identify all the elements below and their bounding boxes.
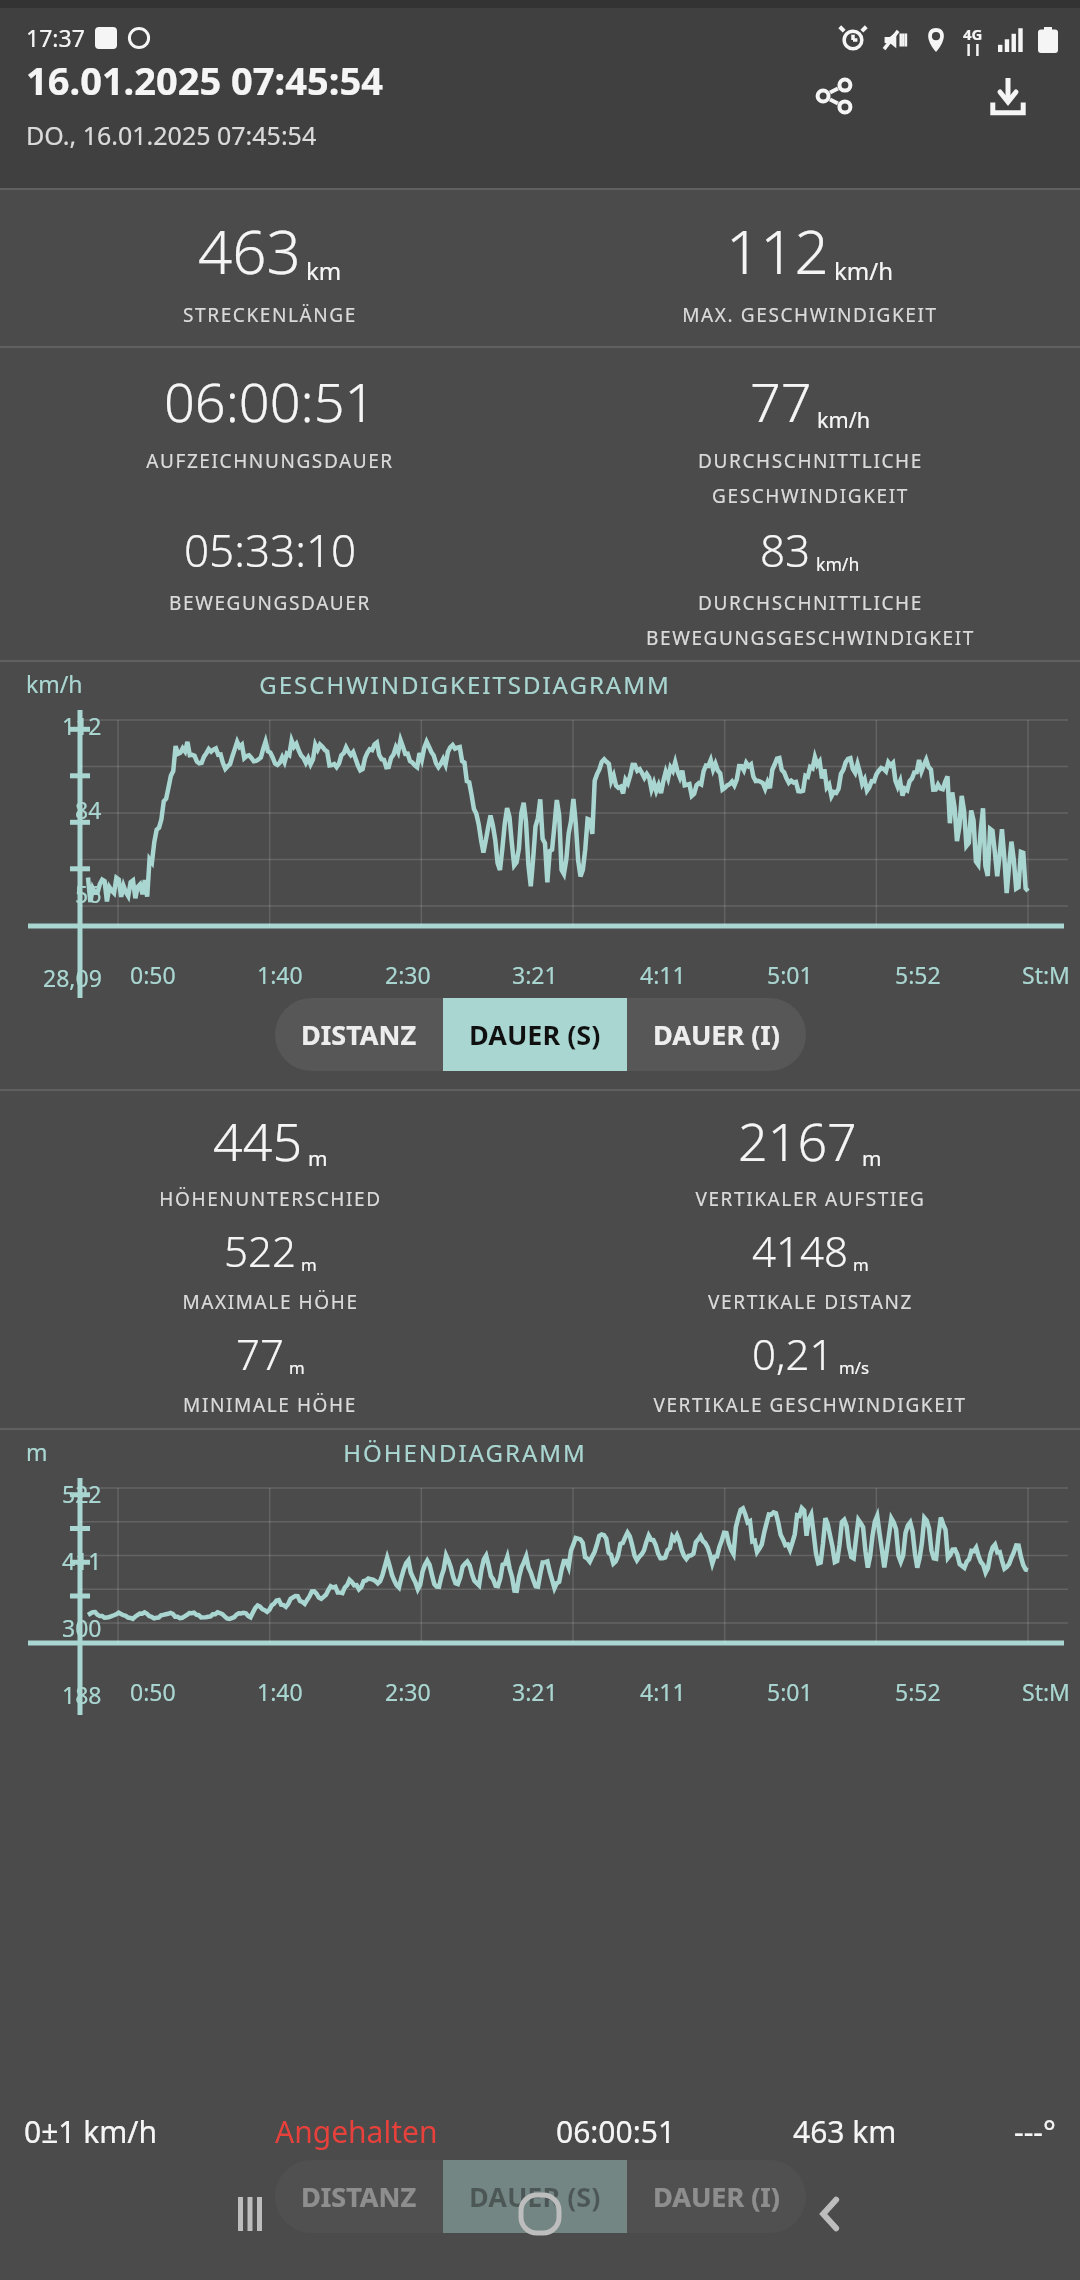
staticText: km bbox=[306, 254, 342, 287]
staticText: VERTIKALE DISTANZ bbox=[708, 1289, 913, 1315]
staticText: 4:11 bbox=[640, 1676, 686, 1707]
staticText: 16.01.2025 07:45:54 bbox=[26, 54, 383, 106]
staticText: DAUER (I) bbox=[653, 2178, 780, 2215]
staticText: 4:11 bbox=[640, 959, 686, 990]
button[interactable]: Share bbox=[802, 64, 866, 128]
staticText: 28,09 bbox=[43, 962, 102, 993]
staticText: 112 bbox=[62, 710, 102, 741]
staticText: m bbox=[289, 1356, 305, 1379]
staticText: St:M bbox=[1022, 959, 1070, 990]
staticText: 522 bbox=[62, 1478, 102, 1509]
staticText: 2167 bbox=[738, 1105, 857, 1176]
staticText: 445 bbox=[213, 1105, 303, 1176]
staticText: MAXIMALE HÖHE bbox=[182, 1289, 359, 1315]
staticText: VERTIKALE GESCHWINDIGKEIT bbox=[653, 1392, 967, 1418]
staticText: m bbox=[853, 1253, 869, 1276]
staticText: 2:30 bbox=[385, 959, 431, 990]
button[interactable]: DAUER (S) bbox=[443, 2160, 627, 2233]
staticText: ---° bbox=[1014, 2111, 1056, 2152]
staticText: 06:00:51 bbox=[556, 2111, 676, 2152]
button[interactable]: DAUER (S) bbox=[443, 998, 627, 1071]
staticText: 17:37 bbox=[26, 22, 85, 53]
staticText: 77 bbox=[236, 1325, 284, 1382]
staticText: 0,21 bbox=[752, 1325, 834, 1382]
button[interactable]: DAUER (I) bbox=[627, 2160, 806, 2233]
staticText: HÖHENDIAGRAMM bbox=[0, 1436, 930, 1469]
staticText: St:M bbox=[1022, 1676, 1070, 1707]
staticText: km/h bbox=[816, 552, 860, 576]
staticText: 1:40 bbox=[257, 959, 303, 990]
button[interactable]: DAUER (I) bbox=[627, 998, 806, 1071]
staticText: 5:01 bbox=[767, 959, 813, 990]
staticText: 188 bbox=[62, 1679, 102, 1710]
staticText: DO., 16.01.2025 07:45:54 bbox=[26, 118, 317, 152]
staticText: 5:01 bbox=[767, 1676, 813, 1707]
staticText: Angehalten bbox=[275, 2111, 438, 2152]
staticText: 56 bbox=[75, 878, 102, 909]
staticText: 0:50 bbox=[130, 1676, 176, 1707]
staticText: DAUER (I) bbox=[653, 1016, 780, 1053]
staticText: 2:30 bbox=[385, 1676, 431, 1707]
staticText: DURCHSCHNITTLICHE GESCHWINDIGKEIT bbox=[698, 448, 923, 508]
staticText: 84 bbox=[75, 794, 102, 825]
staticText: m bbox=[301, 1253, 317, 1276]
staticText: m bbox=[862, 1144, 882, 1172]
staticText: 0±1 km/h bbox=[24, 2111, 158, 2152]
staticText: AUFZEICHNUNGSDAUER bbox=[146, 448, 394, 474]
staticText: km/h bbox=[26, 668, 83, 699]
staticText: 05:33:10 bbox=[184, 520, 357, 580]
staticText: 411 bbox=[62, 1545, 102, 1576]
staticText: DISTANZ bbox=[301, 1016, 417, 1053]
staticText: 06:00:51 bbox=[164, 364, 376, 438]
staticText: 1:40 bbox=[257, 1676, 303, 1707]
staticText: DAUER (S) bbox=[469, 1016, 601, 1053]
staticText: MINIMALE HÖHE bbox=[183, 1392, 357, 1418]
staticText: km/h bbox=[834, 254, 894, 287]
staticText: 3:21 bbox=[512, 1676, 558, 1707]
staticText: m/s bbox=[839, 1356, 869, 1379]
staticText: 300 bbox=[62, 1612, 102, 1643]
staticText: 522 bbox=[224, 1222, 296, 1279]
staticText: VERTIKALER AUFSTIEG bbox=[695, 1186, 926, 1212]
staticText: 0:50 bbox=[130, 959, 176, 990]
staticText: km/h bbox=[817, 405, 871, 434]
staticText: STRECKENLÄNGE bbox=[183, 302, 357, 328]
staticText: BEWEGUNGSDAUER bbox=[169, 590, 371, 616]
staticText: 112 bbox=[726, 210, 829, 292]
staticText: DISTANZ bbox=[301, 2178, 417, 2215]
staticText: HÖHENUNTERSCHIED bbox=[159, 1186, 382, 1212]
button[interactable]: Home bbox=[500, 2174, 580, 2254]
staticText: m bbox=[26, 1436, 48, 1467]
button[interactable]: Back bbox=[790, 2174, 870, 2254]
staticText: 4148 bbox=[752, 1222, 848, 1279]
button[interactable]: DISTANZ bbox=[275, 2160, 443, 2233]
staticText: 77 bbox=[750, 364, 812, 438]
staticText: DAUER (S) bbox=[469, 2178, 601, 2215]
button[interactable]: DISTANZ bbox=[275, 998, 443, 1071]
staticText: 5:52 bbox=[895, 959, 941, 990]
staticText: 463 km bbox=[793, 2111, 897, 2152]
staticText: MAX. GESCHWINDIGKEIT bbox=[682, 302, 938, 328]
button[interactable]: Download bbox=[976, 64, 1040, 128]
button[interactable]: Recents bbox=[210, 2174, 290, 2254]
staticText: 4G bbox=[963, 24, 983, 44]
staticText: 3:21 bbox=[512, 959, 558, 990]
staticText: DURCHSCHNITTLICHE BEWEGUNGSGESCHWINDIGKE… bbox=[646, 590, 975, 650]
staticText: m bbox=[308, 1144, 328, 1172]
staticText: 83 bbox=[760, 520, 811, 580]
staticText: GESCHWINDIGKEITSDIAGRAMM bbox=[0, 668, 930, 701]
staticText: 5:52 bbox=[895, 1676, 941, 1707]
staticText: 463 bbox=[198, 210, 301, 292]
